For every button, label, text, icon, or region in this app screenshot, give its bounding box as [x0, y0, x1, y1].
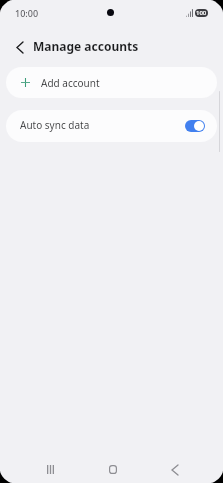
button[interactable]: Home	[98, 455, 127, 483]
staticText: 100	[196, 9, 207, 17]
button[interactable]: Add account	[6, 67, 217, 98]
staticText: Manage accounts	[33, 38, 139, 54]
staticText: 10:00	[15, 7, 39, 19]
button[interactable]: Auto sync data toggle	[185, 120, 205, 132]
button[interactable]: Auto sync data	[6, 110, 217, 142]
button[interactable]: Back	[7, 34, 33, 60]
staticText: Auto sync data	[20, 118, 90, 132]
staticText: Add account	[41, 76, 100, 90]
button[interactable]: Back	[160, 455, 189, 483]
button[interactable]: Recent apps	[36, 455, 65, 483]
